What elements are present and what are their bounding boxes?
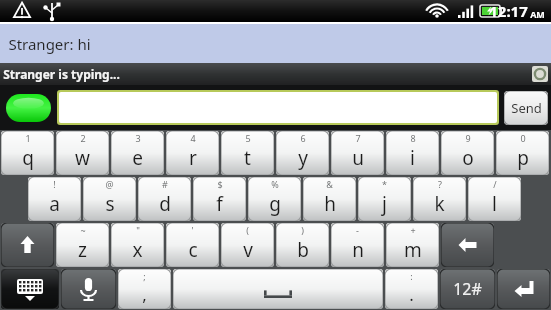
button[interactable]: / xyxy=(468,177,521,221)
staticText: s xyxy=(105,191,115,217)
button[interactable]: ; xyxy=(118,269,171,309)
button[interactable]: 6 xyxy=(276,131,329,175)
staticText: Stranger is typing... xyxy=(3,66,120,82)
staticText: ; xyxy=(143,270,146,282)
button[interactable]: : xyxy=(385,269,438,309)
staticText: l xyxy=(492,191,497,217)
staticText: 5 xyxy=(245,132,251,144)
staticText: t xyxy=(244,145,251,171)
staticText: b xyxy=(297,237,309,263)
staticText: 9 xyxy=(465,132,471,144)
staticText: x xyxy=(132,237,143,263)
staticText: d xyxy=(159,191,171,217)
staticText: v xyxy=(243,237,253,263)
staticText: * xyxy=(382,178,387,190)
staticText: k xyxy=(434,191,445,217)
staticText: p xyxy=(517,145,529,171)
staticText: h xyxy=(324,191,336,217)
button[interactable]: # xyxy=(138,177,191,221)
button[interactable]: 9 xyxy=(441,131,494,175)
button[interactable]: - xyxy=(331,223,384,267)
staticText: 6 xyxy=(300,132,306,144)
staticText: m xyxy=(404,237,422,263)
staticText: ( xyxy=(246,224,249,236)
staticText: 12# xyxy=(453,278,482,300)
staticText: - xyxy=(356,224,359,236)
staticText: AM xyxy=(530,8,545,20)
staticText: + xyxy=(410,224,416,236)
staticText: a xyxy=(49,191,60,217)
button[interactable]: ~ xyxy=(56,223,109,267)
staticText: # xyxy=(162,178,168,190)
staticText: e xyxy=(132,145,143,171)
button[interactable]: Send xyxy=(504,91,548,125)
button[interactable]: ) xyxy=(276,223,329,267)
staticText: 4 xyxy=(190,132,196,144)
staticText: % xyxy=(271,178,279,190)
button[interactable]: ' xyxy=(166,223,219,267)
staticText: Send xyxy=(511,99,542,117)
staticText: ! xyxy=(53,178,56,190)
button[interactable]: * xyxy=(358,177,411,221)
button[interactable]: 2 xyxy=(56,131,109,175)
button[interactable]: Enter xyxy=(497,269,550,309)
staticText: $ xyxy=(217,178,223,190)
staticText: z xyxy=(78,237,87,263)
staticText: o xyxy=(462,145,474,171)
staticText: , xyxy=(142,283,147,306)
button[interactable]: 5 xyxy=(221,131,274,175)
button[interactable]: ? xyxy=(413,177,466,221)
staticText: @ xyxy=(105,178,114,190)
staticText: ) xyxy=(301,224,304,236)
staticText: ? xyxy=(438,178,442,190)
staticText: n xyxy=(352,237,364,263)
staticText: c xyxy=(188,237,198,263)
button[interactable]: ! xyxy=(28,177,81,221)
staticText: : xyxy=(410,270,413,282)
staticText: 1 xyxy=(25,132,31,144)
button[interactable]: Voice input xyxy=(61,269,116,309)
staticText: q xyxy=(22,145,34,171)
staticText: 2 xyxy=(80,132,86,144)
button[interactable]: & xyxy=(303,177,356,221)
button[interactable]: 0 xyxy=(496,131,549,175)
staticText: u xyxy=(352,145,364,171)
button[interactable]: 8 xyxy=(386,131,439,175)
button[interactable]: 4 xyxy=(166,131,219,175)
button[interactable]: @ xyxy=(83,177,136,221)
button[interactable]: $ xyxy=(193,177,246,221)
staticText: " xyxy=(136,224,140,236)
button[interactable]: Refresh xyxy=(532,66,548,82)
staticText: ~ xyxy=(80,224,86,236)
button[interactable]: 7 xyxy=(331,131,384,175)
button[interactable]: " xyxy=(111,223,164,267)
button[interactable]: 3 xyxy=(111,131,164,175)
staticText: . xyxy=(409,283,414,306)
button[interactable]: ( xyxy=(221,223,274,267)
staticText: 8 xyxy=(410,132,416,144)
staticText: 7 xyxy=(355,132,361,144)
button[interactable]: Space xyxy=(173,269,383,309)
button[interactable]: Backspace xyxy=(441,223,494,267)
staticText: w xyxy=(75,145,90,171)
staticText: g xyxy=(269,191,281,217)
staticText: y xyxy=(298,145,308,171)
button[interactable]: Connected xyxy=(6,94,51,122)
staticText: ' xyxy=(191,224,194,236)
staticText: j xyxy=(382,191,387,217)
button[interactable]: 1 xyxy=(1,131,54,175)
button[interactable]: Stranger: hi xyxy=(0,24,551,63)
staticText: 0 xyxy=(520,132,526,144)
button[interactable]: + xyxy=(386,223,439,267)
button[interactable]: 12# xyxy=(440,269,495,309)
button[interactable]: Shift xyxy=(1,223,54,267)
staticText: r xyxy=(189,145,197,171)
staticText: & xyxy=(326,178,333,190)
button[interactable]: % xyxy=(248,177,301,221)
button[interactable]: Hide keyboard xyxy=(1,269,59,309)
staticText: i xyxy=(410,145,415,171)
staticText: / xyxy=(493,178,497,190)
staticText: 3 xyxy=(135,132,141,144)
staticText: 12:17 xyxy=(489,1,528,21)
